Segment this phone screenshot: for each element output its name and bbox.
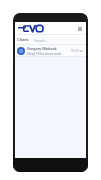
button[interactable]: Menu [77,26,83,32]
button[interactable]: EVO home [18,24,44,33]
staticText: Okay! I'll be there soon. [27,52,63,56]
staticText: Gregory Mattock [27,46,57,51]
staticText: 10:32 am [71,49,84,53]
button[interactable]: Search... [32,37,84,43]
staticText: Search... [34,38,48,43]
staticText: Chats [17,37,29,43]
button[interactable]: Gregory Mattock [15,45,86,56]
